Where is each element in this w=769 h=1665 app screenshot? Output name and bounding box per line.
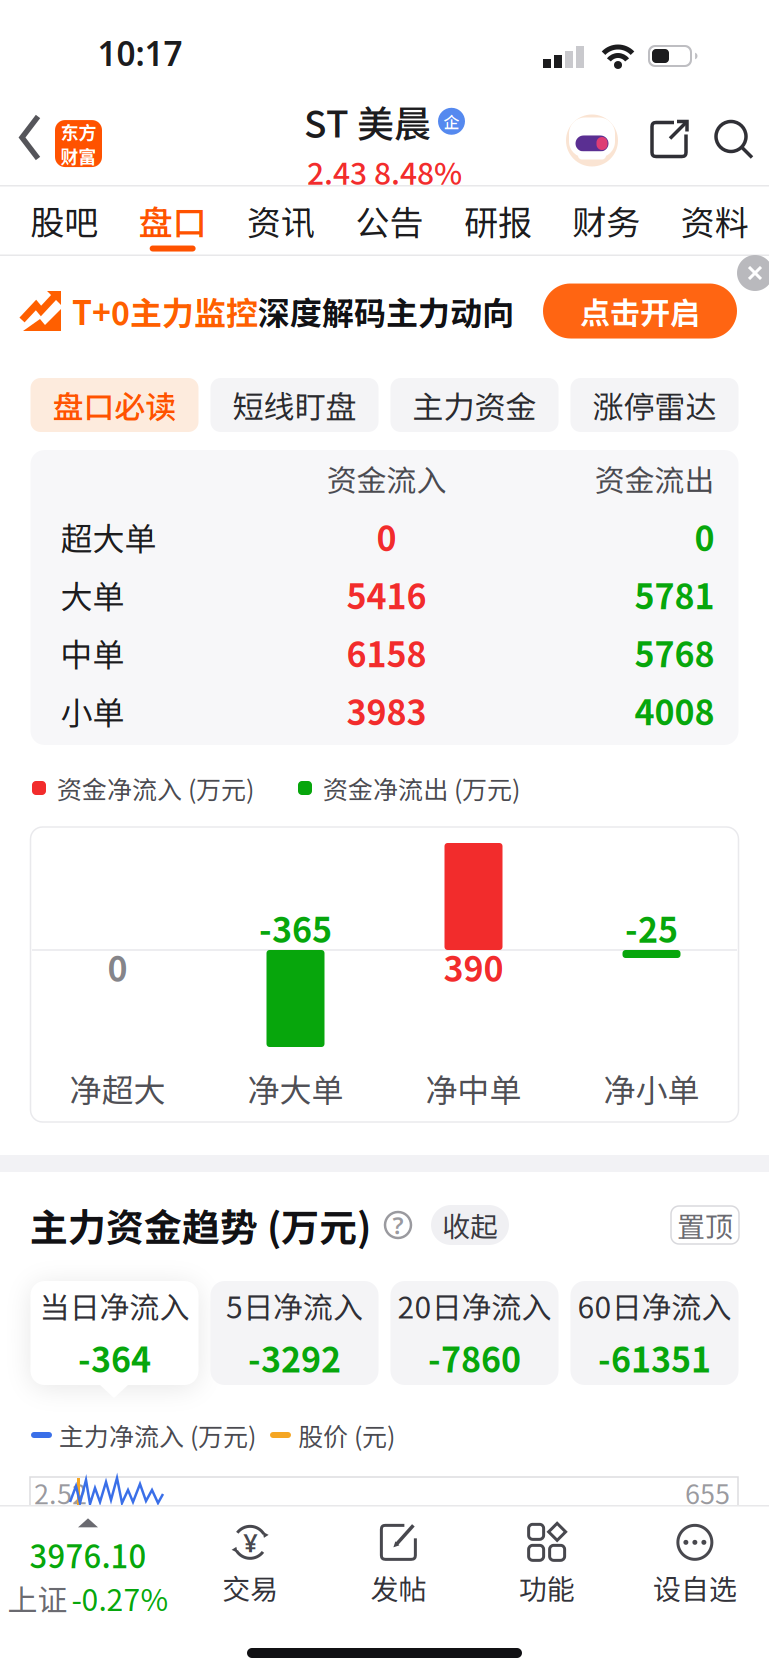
staticText: -365: [259, 903, 332, 953]
button[interactable]: 收起: [431, 1205, 509, 1245]
staticText: 655: [685, 1473, 730, 1512]
staticText: 4008: [634, 686, 714, 735]
staticText: T+0主力监控: [72, 288, 258, 334]
button[interactable]: 财务: [552, 186, 660, 254]
button[interactable]: 股吧: [10, 186, 118, 254]
staticText: 收起: [442, 1205, 498, 1245]
staticText: 0: [376, 512, 396, 561]
button[interactable]: 盘口: [118, 186, 227, 254]
staticText: 股价 (元): [298, 1417, 395, 1453]
staticText: 点击开启: [580, 289, 700, 333]
staticText: 资金流出: [594, 457, 714, 500]
staticText: 3976.10: [29, 1532, 146, 1577]
staticText: 5768: [634, 628, 714, 677]
button[interactable]: 涨停雷达: [570, 378, 738, 432]
staticText: 公告: [355, 196, 423, 245]
button[interactable]: 60日净流入: [570, 1281, 738, 1385]
staticText: 3983: [346, 686, 426, 735]
staticText: 财务: [572, 196, 640, 245]
staticText: 发帖: [370, 1567, 426, 1608]
staticText: -0.27%: [71, 1576, 168, 1620]
staticText: 主力净流入 (万元): [59, 1417, 256, 1453]
staticText: 功能: [519, 1567, 575, 1608]
staticText: 当日净流入: [39, 1284, 189, 1327]
button[interactable]: 公告: [335, 186, 444, 254]
button[interactable]: 盘口必读: [30, 378, 198, 432]
staticText: 0: [694, 512, 714, 561]
button[interactable]: 20日净流入: [390, 1281, 558, 1385]
staticText: 净大单: [247, 1065, 343, 1111]
staticText: 置顶: [677, 1205, 733, 1245]
staticText: 超大单: [60, 513, 156, 560]
button[interactable]: Close: [737, 255, 769, 291]
button[interactable]: Search: [713, 118, 755, 160]
staticText: 390: [443, 942, 503, 992]
staticText: 5416: [346, 570, 426, 619]
staticText: 净超大: [69, 1065, 165, 1111]
button[interactable]: 点击开启: [543, 283, 737, 338]
staticText: 20日净流入: [397, 1284, 551, 1327]
staticText: 6158: [346, 628, 426, 677]
staticText: 盘口: [139, 196, 207, 245]
button[interactable]: Assistant: [566, 114, 618, 166]
staticText: 深度解码主力动向: [258, 288, 514, 334]
staticText: ?: [392, 1209, 403, 1241]
button[interactable]: 研报: [444, 186, 552, 254]
button[interactable]: 发帖: [324, 1510, 472, 1608]
button[interactable]: 设自选: [621, 1510, 769, 1608]
staticText: 资金净流入 (万元): [57, 770, 254, 806]
staticText: 2.43 8.48%: [307, 150, 462, 193]
staticText: 企: [443, 110, 459, 133]
button[interactable]: 短线盯盘: [210, 378, 378, 432]
button[interactable]: Share: [649, 119, 689, 159]
staticText: 研报: [464, 196, 532, 245]
staticText: 交易: [222, 1567, 278, 1608]
button[interactable]: 功能: [472, 1510, 621, 1608]
staticText: 大单: [60, 571, 124, 618]
button[interactable]: 置顶: [671, 1205, 739, 1245]
button[interactable]: 资讯: [227, 186, 335, 254]
staticText: 净小单: [603, 1065, 699, 1111]
staticText: 资讯: [247, 196, 315, 245]
button[interactable]: 主力资金: [390, 378, 558, 432]
staticText: 0: [107, 942, 127, 992]
staticText: ST 美晨: [304, 94, 431, 148]
staticText: 盘口必读: [52, 383, 176, 427]
button[interactable]: 5日净流入: [210, 1281, 378, 1385]
staticText: -3292: [248, 1333, 341, 1382]
staticText: 5781: [634, 570, 714, 619]
staticText: 中单: [60, 629, 124, 676]
staticText: -364: [78, 1333, 151, 1382]
staticText: 东方: [60, 118, 96, 145]
staticText: 10:17: [97, 31, 182, 75]
staticText: 5日净流入: [226, 1284, 363, 1327]
staticText: 短线盯盘: [232, 383, 356, 427]
staticText: ¥: [243, 1525, 257, 1559]
button[interactable]: 3976.10: [0, 1510, 176, 1620]
button[interactable]: 资料: [661, 186, 769, 254]
staticText: 资金净流出 (万元): [323, 770, 520, 806]
staticText: 股吧: [30, 196, 98, 245]
staticText: -61351: [598, 1333, 711, 1382]
staticText: 上证: [7, 1576, 67, 1620]
staticText: -25: [625, 903, 678, 953]
staticText: 设自选: [653, 1567, 737, 1608]
staticText: 资料: [681, 196, 749, 245]
button[interactable]: 当日净流入: [30, 1281, 198, 1385]
staticText: 2.52: [34, 1473, 87, 1512]
staticText: 主力资金: [412, 383, 536, 427]
staticText: 资金流入: [326, 457, 446, 500]
button[interactable]: ¥: [176, 1510, 324, 1608]
staticText: 主力资金趋势 (万元): [30, 1197, 371, 1252]
staticText: 小单: [60, 687, 124, 734]
staticText: 净中单: [425, 1065, 521, 1111]
staticText: 60日净流入: [577, 1284, 731, 1327]
staticText: 涨停雷达: [592, 383, 716, 427]
staticText: -7860: [428, 1333, 521, 1382]
staticText: 财富: [60, 143, 96, 169]
button[interactable]: Back: [22, 116, 40, 158]
